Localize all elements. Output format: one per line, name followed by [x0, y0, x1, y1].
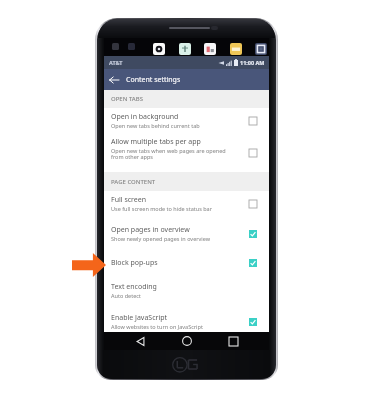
staticText: OPEN TABS [111, 95, 144, 103]
staticText: Use full screen mode to hide status bar [111, 205, 212, 212]
staticText: Open new tabs behind current tab [111, 122, 200, 129]
button[interactable]: Recent apps [223, 332, 243, 350]
staticText: Show newly opened pages in overview [111, 235, 211, 242]
button[interactable]: Full screen [104, 193, 269, 214]
button[interactable]: Toggle setting [247, 147, 258, 158]
staticText: Block pop-ups [111, 258, 158, 268]
button[interactable]: Home [177, 332, 197, 350]
staticText: Open pages in overview [111, 225, 190, 235]
button[interactable]: Allow multiple tabs per app [104, 136, 269, 162]
staticText: PAGE CONTENT [111, 178, 156, 186]
staticText: Text encoding [111, 282, 157, 292]
button[interactable]: Text encoding [104, 280, 269, 301]
staticText: Auto detect [111, 292, 141, 299]
button[interactable]: Toggle setting [247, 198, 258, 209]
button[interactable]: Toggle setting [247, 316, 258, 327]
button[interactable]: Toggle setting [247, 228, 258, 239]
button[interactable]: Block pop-ups [104, 254, 269, 271]
staticText: Enable JavaScript [111, 313, 168, 323]
button[interactable]: Toggle setting [247, 115, 258, 126]
button[interactable]: Open in background [104, 110, 269, 131]
staticText: Content settings [126, 75, 181, 85]
staticText: Full screen [111, 195, 147, 205]
staticText: Open new tabs when web pages are opened … [111, 147, 226, 161]
button[interactable]: Back [130, 332, 150, 350]
button[interactable]: Navigate up [104, 69, 124, 90]
button[interactable]: Enable JavaScript [104, 311, 269, 332]
staticText: Allow websites to turn on JavaScript [111, 323, 203, 330]
staticText: Open in background [111, 112, 179, 122]
button[interactable]: Open pages in overview [104, 223, 269, 244]
button[interactable]: Toggle setting [247, 257, 258, 268]
staticText: 11:00 AM [240, 59, 265, 66]
staticText: AT&T [109, 59, 123, 66]
staticText: Allow multiple tabs per app [111, 137, 201, 147]
